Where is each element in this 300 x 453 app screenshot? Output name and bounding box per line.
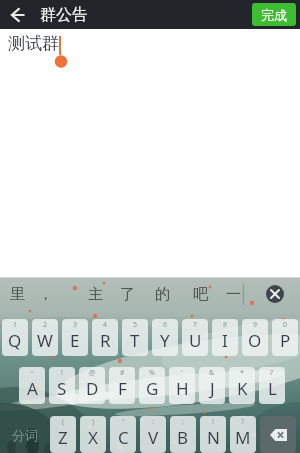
button[interactable]: 4: [92, 319, 118, 356]
button[interactable]: 0: [272, 319, 298, 356]
staticText: 主: [88, 285, 103, 304]
button[interactable]: 里: [4, 282, 30, 306]
staticText: 分词: [12, 427, 38, 443]
staticText: @: [89, 368, 96, 378]
staticText: ;: [182, 417, 184, 427]
button[interactable]: 完成: [252, 3, 296, 26]
staticText: *: [240, 368, 244, 378]
button[interactable]: *: [229, 367, 255, 404]
button[interactable]: ?: [230, 416, 256, 453]
staticText: 吧: [193, 285, 208, 304]
staticText: !: [212, 417, 214, 427]
staticText: 测试群: [8, 33, 59, 54]
button[interactable]: 2: [32, 319, 58, 356]
button[interactable]: ，: [32, 282, 58, 306]
button[interactable]: !: [49, 367, 75, 404]
button[interactable]: ": [110, 416, 136, 453]
staticText: Z: [58, 426, 68, 449]
staticText: C: [118, 426, 129, 449]
staticText: M: [235, 426, 251, 449]
staticText: 0: [283, 320, 288, 330]
staticText: N: [207, 426, 220, 449]
staticText: 5: [133, 320, 138, 330]
button[interactable]: [260, 416, 296, 453]
staticText: ，: [38, 285, 53, 304]
button[interactable]: 3: [62, 319, 88, 356]
button[interactable]: ~: [19, 367, 45, 404]
staticText: 完成: [261, 7, 287, 23]
button[interactable]: 6: [152, 319, 178, 356]
staticText: A: [27, 377, 38, 400]
staticText: ": [122, 417, 125, 427]
button[interactable]: #: [109, 367, 135, 404]
staticText: ?: [270, 368, 274, 378]
staticText: D: [86, 377, 99, 400]
button[interactable]: 9: [242, 319, 268, 356]
staticText: :: [152, 417, 154, 427]
staticText: ~: [30, 368, 35, 378]
staticText: P: [280, 329, 291, 352]
button[interactable]: @: [79, 367, 105, 404]
staticText: R: [100, 329, 111, 352]
button[interactable]: 一: [220, 282, 246, 306]
button[interactable]: ': [169, 367, 195, 404]
button[interactable]: 分词: [4, 416, 46, 453]
staticText: K: [237, 377, 248, 400]
staticText: 里: [10, 285, 25, 304]
button[interactable]: [266, 285, 284, 303]
staticText: (: [62, 417, 65, 427]
staticText: 1: [13, 320, 18, 330]
staticText: 6: [163, 320, 168, 330]
staticText: H: [176, 377, 189, 400]
staticText: W: [37, 329, 53, 352]
staticText: 2: [43, 320, 48, 330]
button[interactable]: :: [140, 416, 166, 453]
button[interactable]: 1: [2, 319, 28, 356]
staticText: E: [70, 329, 80, 352]
button[interactable]: 了: [114, 282, 140, 306]
button[interactable]: 的: [149, 282, 175, 306]
button[interactable]: 8: [212, 319, 238, 356]
staticText: U: [189, 329, 202, 352]
staticText: V: [148, 426, 159, 449]
staticText: Y: [160, 329, 170, 352]
staticText: B: [177, 426, 189, 449]
button[interactable]: (: [50, 416, 76, 453]
staticText: 4: [103, 320, 108, 330]
staticText: L: [268, 377, 277, 400]
button[interactable]: 主: [82, 282, 108, 306]
staticText: ): [92, 417, 95, 427]
staticText: O: [248, 329, 262, 352]
staticText: !: [61, 368, 63, 378]
staticText: ': [181, 368, 183, 378]
button[interactable]: &: [199, 367, 225, 404]
staticText: 7: [193, 320, 198, 330]
staticText: #: [120, 368, 125, 378]
staticText: J: [210, 377, 215, 400]
staticText: %: [149, 368, 155, 378]
staticText: I: [222, 329, 228, 352]
staticText: 一: [226, 285, 241, 304]
staticText: 9: [253, 320, 258, 330]
staticText: Q: [8, 329, 22, 352]
button[interactable]: ;: [170, 416, 196, 453]
staticText: 了: [120, 285, 135, 304]
button[interactable]: 吧: [187, 282, 213, 306]
staticText: 8: [223, 320, 228, 330]
button[interactable]: %: [139, 367, 165, 404]
staticText: T: [130, 329, 140, 352]
button[interactable]: !: [200, 416, 226, 453]
staticText: 3: [73, 320, 78, 330]
staticText: F: [118, 377, 127, 400]
staticText: S: [57, 377, 67, 400]
button[interactable]: ?: [259, 367, 285, 404]
staticText: &: [209, 368, 215, 378]
staticText: 的: [155, 285, 170, 304]
button[interactable]: ): [80, 416, 106, 453]
staticText: 群公告: [40, 5, 88, 25]
button[interactable]: 7: [182, 319, 208, 356]
button[interactable]: 5: [122, 319, 148, 356]
staticText: G: [146, 377, 159, 400]
button[interactable]: [0, 0, 34, 29]
staticText: ?: [241, 417, 245, 427]
